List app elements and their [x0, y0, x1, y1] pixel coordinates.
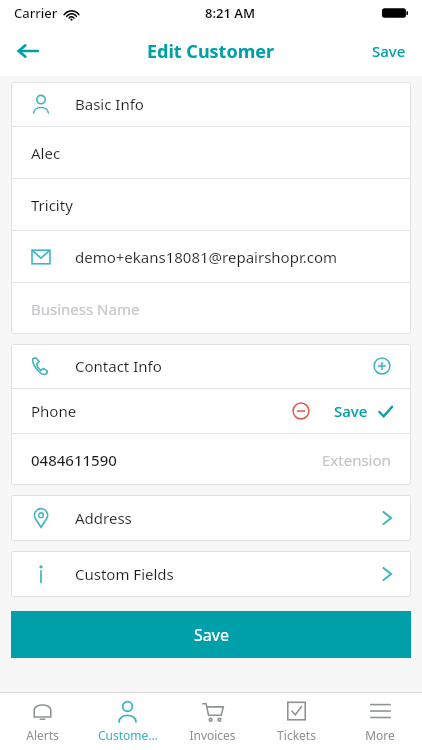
- button[interactable]: Address: [11, 495, 411, 541]
- staticText: 8:21 AM: [205, 4, 256, 22]
- button[interactable]: Contact Info: [11, 344, 411, 388]
- staticText: Carrier: [14, 4, 58, 22]
- button[interactable]: Save: [366, 33, 412, 69]
- button[interactable]: Tickets: [254, 693, 338, 750]
- button[interactable]: Custome...: [85, 693, 170, 750]
- button[interactable]: demo+ekans18081@repairshopr.com: [11, 231, 411, 282]
- staticText: Extension: [322, 450, 391, 470]
- staticText: Edit Customer: [147, 39, 275, 64]
- staticText: demo+ekans18081@repairshopr.com: [75, 247, 338, 267]
- staticText: Alec: [31, 143, 61, 163]
- staticText: Invoices: [189, 727, 236, 743]
- button[interactable]: Remove phone: [288, 398, 314, 424]
- button[interactable]: Add contact: [369, 353, 395, 379]
- staticText: Custom Fields: [75, 564, 174, 584]
- button[interactable]: Alec: [11, 127, 411, 178]
- button[interactable]: Save: [11, 611, 411, 658]
- button[interactable]: Basic Info: [11, 82, 411, 126]
- staticText: More: [365, 727, 395, 743]
- staticText: Contact Info: [75, 356, 162, 376]
- button[interactable]: Alerts: [0, 693, 85, 750]
- button[interactable]: Save: [330, 395, 397, 427]
- button[interactable]: More: [338, 693, 422, 750]
- staticText: Custome...: [98, 727, 158, 743]
- staticText: Save: [372, 41, 406, 61]
- staticText: Business Name: [31, 299, 140, 319]
- staticText: Tricity: [31, 195, 73, 215]
- staticText: Tickets: [277, 727, 316, 743]
- staticText: Basic Info: [75, 94, 144, 114]
- button[interactable]: Business Name: [11, 283, 411, 334]
- staticText: Phone: [31, 401, 77, 421]
- staticText: Save: [194, 624, 229, 646]
- button[interactable]: Back: [6, 29, 50, 73]
- staticText: 0484611590: [31, 450, 117, 470]
- staticText: Alerts: [26, 727, 59, 743]
- button[interactable]: Tricity: [11, 179, 411, 230]
- staticText: Save: [334, 401, 368, 421]
- staticText: Address: [75, 508, 132, 528]
- button[interactable]: 0484611590: [31, 434, 391, 485]
- button[interactable]: Invoices: [170, 693, 254, 750]
- button[interactable]: Custom Fields: [11, 551, 411, 597]
